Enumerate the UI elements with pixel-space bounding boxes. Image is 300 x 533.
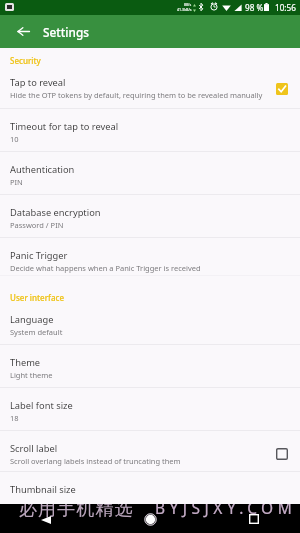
staticText: User interface [10, 292, 65, 303]
staticText: Panic Trigger [10, 249, 68, 262]
staticText: Scroll label [10, 442, 58, 455]
staticText: 10 [10, 134, 19, 144]
staticText: Hide the OTP tokens by default, requirin… [10, 90, 263, 100]
staticText: Database encryption [10, 206, 101, 219]
staticText: Light theme [10, 370, 53, 380]
button[interactable]: Timeout for tap to reveal [0, 108, 300, 151]
button[interactable]: Database encryption [0, 194, 300, 237]
staticText: BYJSJXY.COM [155, 504, 297, 518]
button[interactable]: Label font size [0, 387, 300, 431]
staticText: Label font size [10, 399, 73, 412]
button[interactable]: Theme [0, 344, 300, 387]
button[interactable]: Panic Trigger [0, 237, 300, 275]
staticText: Scroll overlang labels instead of trunca… [10, 456, 181, 466]
button[interactable]: Authentication [0, 151, 300, 194]
button[interactable]: Back [30, 504, 64, 533]
staticText: 41.3kB/s [177, 7, 192, 12]
button[interactable]: Scroll label [0, 430, 300, 471]
staticText: System default [10, 327, 63, 337]
staticText: Settings [43, 24, 89, 40]
staticText: PIN [10, 177, 23, 187]
staticText: 必用手机精选 [19, 504, 134, 521]
staticText: Decide what happens when a Panic Trigger… [10, 263, 201, 273]
staticText: Security [10, 55, 41, 66]
staticText: 98 % [245, 2, 264, 13]
staticText: Theme [10, 356, 41, 369]
staticText: Password / PIN [10, 220, 64, 230]
button[interactable]: Tap to reveal [0, 64, 300, 108]
staticText: 88/s [184, 2, 192, 7]
staticText: Timeout for tap to reveal [10, 120, 119, 133]
button[interactable]: Home [133, 505, 167, 533]
button[interactable]: Thumbnail size [0, 471, 300, 504]
staticText: 18 [10, 413, 19, 423]
staticText: Thumbnail size [10, 483, 76, 496]
button[interactable]: Navigate up [8, 15, 38, 48]
staticText: 10:56 [275, 2, 296, 13]
button[interactable]: Language [0, 301, 300, 344]
button[interactable]: Recent apps [237, 504, 271, 533]
staticText: Authentication [10, 163, 75, 176]
staticText: Language [10, 313, 54, 326]
staticText: Tap to reveal [10, 76, 66, 89]
